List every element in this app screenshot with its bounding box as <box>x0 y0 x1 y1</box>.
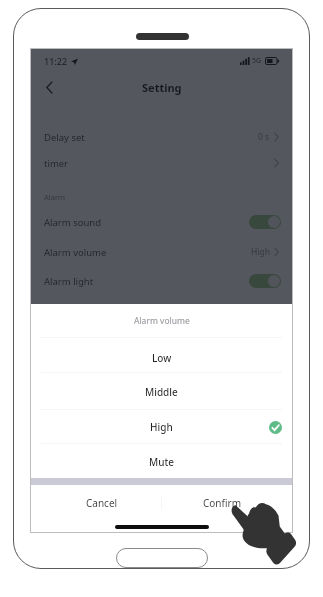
staticText: Mute <box>149 455 175 469</box>
button[interactable] <box>30 239 293 265</box>
button[interactable]: Mute <box>30 445 293 479</box>
staticText: Setting <box>142 80 182 95</box>
staticText: Delay set <box>44 131 85 144</box>
staticText: Alarm light <box>44 275 94 288</box>
button[interactable]: High <box>30 410 293 444</box>
button[interactable]: Middle <box>30 375 293 409</box>
staticText: Confirm <box>203 496 242 510</box>
staticText: 5G <box>252 56 262 66</box>
button[interactable] <box>30 150 293 176</box>
button[interactable]: Toggle <box>249 274 281 288</box>
staticText: Cancel <box>86 496 118 510</box>
staticText: High <box>251 246 270 258</box>
button[interactable]: Low <box>30 341 293 375</box>
button[interactable]: Confirm <box>162 485 282 520</box>
staticText: 0 s <box>258 131 270 143</box>
button[interactable] <box>30 209 293 235</box>
button[interactable]: Back <box>38 76 60 98</box>
button[interactable]: Toggle <box>249 215 281 229</box>
staticText: Middle <box>145 385 178 399</box>
staticText: Alarm volume <box>44 246 107 259</box>
button[interactable]: Cancel <box>42 485 162 520</box>
staticText: Alarm sound <box>44 216 102 229</box>
staticText: High <box>150 420 173 434</box>
staticText: Alarm volume <box>134 315 190 327</box>
staticText: 11:22 <box>44 55 68 67</box>
staticText: Low <box>152 351 172 365</box>
staticText: timer <box>44 157 69 170</box>
staticText: Alarm <box>44 192 66 202</box>
button[interactable] <box>30 268 293 294</box>
button[interactable] <box>30 124 293 150</box>
